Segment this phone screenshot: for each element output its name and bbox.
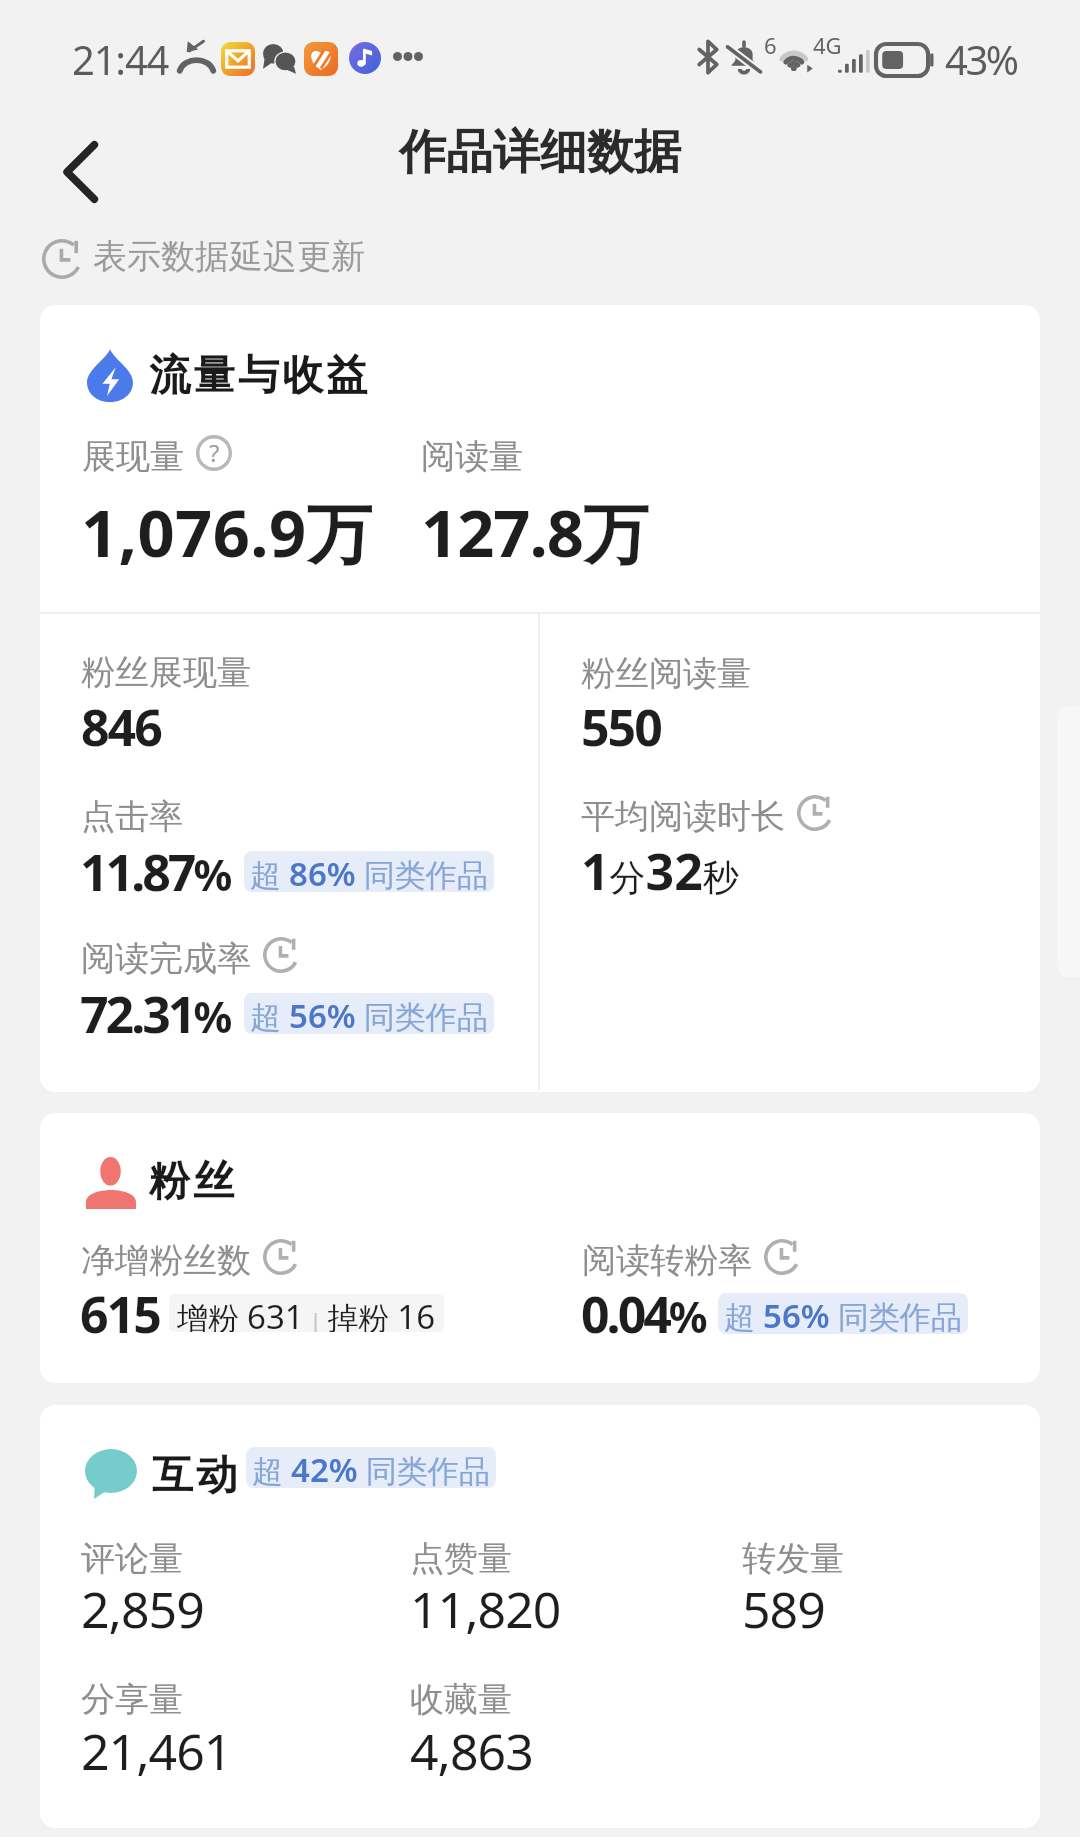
staticText: 550 (581, 693, 661, 761)
staticText: 评论量 (81, 1537, 183, 1580)
staticText: 阅读转粉率 (582, 1239, 752, 1282)
staticText: 净增粉丝数 (81, 1239, 251, 1282)
staticText: 589 (742, 1575, 825, 1643)
staticText: 4,863 (410, 1717, 533, 1785)
button[interactable]: 阅读转粉率 0.04% (560, 1223, 1000, 1333)
staticText: 分享量 (81, 1678, 183, 1721)
staticText: 流量与收益 (148, 350, 369, 402)
staticText: 粉丝阅读量 (581, 652, 751, 695)
staticText: 互动 (152, 1450, 241, 1502)
staticText: 1分32秒 (581, 837, 739, 905)
staticText: 阅读量 (421, 435, 523, 478)
button[interactable]: 点赞量 11,820 (390, 1520, 710, 1630)
staticText: 1,076.9万 (81, 488, 372, 577)
staticText: 点击率 (81, 795, 183, 838)
staticText: 表示数据延迟更新 (93, 235, 365, 278)
button[interactable]: 阅读量 127.8万 (400, 415, 730, 545)
staticText: 72.31% (80, 980, 232, 1048)
staticText: 收藏量 (410, 1678, 512, 1721)
button[interactable]: 转发量 589 (720, 1520, 1020, 1630)
staticText: 展现量 (82, 435, 184, 478)
staticText: 6 (764, 30, 777, 60)
button[interactable]: 粉丝展现量 846 (60, 635, 530, 755)
button[interactable]: 收藏量 4,863 (390, 1661, 710, 1771)
staticText: 127.8万 (421, 488, 647, 577)
staticText: 615 (80, 1280, 160, 1348)
staticText: 粉丝 (149, 1156, 238, 1208)
staticText: 0.04% (581, 1280, 707, 1348)
button[interactable]: 点击率 11.87% (60, 775, 530, 905)
staticText: 平均阅读时长 (581, 795, 785, 838)
button[interactable]: Back (62, 141, 98, 203)
button[interactable]: 分享量 21,461 (60, 1661, 380, 1771)
staticText: 43% (945, 32, 1017, 86)
staticText: 2,859 (81, 1575, 204, 1643)
staticText: 4G (813, 30, 842, 60)
staticText: 超 56% 同类作品 (724, 1293, 962, 1334)
button[interactable]: 阅读完成率 72.31% (60, 917, 530, 1047)
staticText: 转发量 (742, 1537, 844, 1580)
button[interactable]: 平均阅读时长 1分32秒 (560, 775, 1000, 905)
staticText: 21:44 (72, 32, 169, 86)
staticText: 超 86% 同类作品 (250, 851, 488, 892)
button[interactable]: 粉丝阅读量 550 (560, 635, 1000, 755)
button[interactable]: 展现量 1,076.9万 (60, 415, 390, 545)
staticText: 粉丝展现量 (81, 651, 251, 694)
staticText: 846 (81, 693, 161, 761)
staticText: 增粉 631 | 掉粉 16 (177, 1294, 436, 1332)
staticText: 点赞量 (410, 1537, 512, 1580)
staticText: 21,461 (81, 1717, 232, 1785)
button[interactable]: 评论量 2,859 (60, 1520, 380, 1630)
button[interactable]: 净增粉丝数 615 (60, 1223, 530, 1333)
staticText: 11,820 (410, 1575, 561, 1643)
staticText: ? (209, 436, 220, 469)
staticText: 11.87% (80, 838, 232, 906)
staticText: 阅读完成率 (81, 937, 251, 980)
staticText: 超 56% 同类作品 (250, 993, 488, 1034)
staticText: 作品详细数据 (399, 123, 681, 182)
staticText: 超 42% 同类作品 (252, 1447, 490, 1488)
